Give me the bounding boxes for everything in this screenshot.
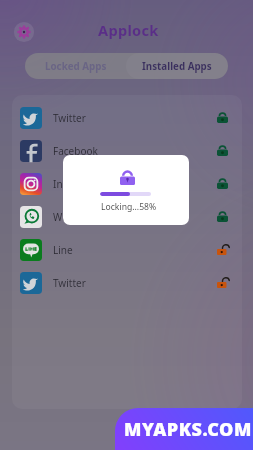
staticText: Applock — [98, 20, 159, 40]
button[interactable]: Settings — [13, 21, 35, 43]
staticText: WhatsApp — [53, 210, 102, 224]
staticText: Twitter — [53, 276, 86, 290]
button[interactable]: Facebook — [12, 134, 242, 167]
button[interactable]: Installed Apps — [126, 53, 228, 79]
staticText: Instagram — [53, 177, 102, 191]
staticText: Installed Apps — [142, 60, 212, 73]
staticText: Facebook — [53, 144, 98, 158]
button[interactable]: Locked Apps — [25, 53, 126, 79]
button[interactable]: Instagram — [12, 167, 242, 200]
staticText: Locking...58% — [101, 201, 157, 213]
button[interactable]: WhatsApp — [12, 200, 242, 233]
staticText: Locked Apps — [45, 60, 107, 73]
button[interactable]: Twitter — [12, 101, 242, 134]
staticText: MYAPKS.COM — [124, 417, 252, 442]
staticText: Line — [53, 243, 73, 257]
staticText: Twitter — [53, 111, 86, 125]
button[interactable]: Line — [12, 233, 242, 266]
button[interactable]: Twitter — [12, 266, 242, 299]
